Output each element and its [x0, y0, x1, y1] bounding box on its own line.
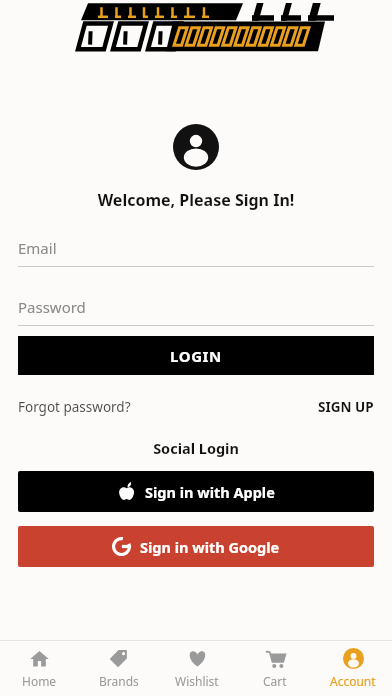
- staticText: Password: [18, 297, 86, 317]
- staticText: Brands: [99, 673, 139, 689]
- button[interactable]: Sign in with Apple: [18, 471, 374, 512]
- button[interactable]: Password: [18, 297, 374, 326]
- button[interactable]: Wishlist: [158, 641, 236, 696]
- button[interactable]: Brands: [79, 641, 158, 696]
- staticText: Account: [330, 673, 376, 689]
- staticText: Wishlist: [175, 673, 219, 689]
- staticText: Welcome, Please Sign In!: [0, 189, 392, 211]
- button[interactable]: Cart: [236, 641, 314, 696]
- staticText: Sign in with Google: [140, 537, 280, 557]
- staticText: SIGN UP: [318, 398, 374, 416]
- staticText: Forgot password?: [18, 398, 131, 416]
- staticText: Cart: [263, 673, 287, 689]
- staticText: Email: [18, 238, 57, 258]
- button[interactable]: Home: [0, 641, 79, 696]
- button[interactable]: SIGN UP: [318, 398, 374, 416]
- button[interactable]: LOGIN: [18, 336, 374, 375]
- button[interactable]: Account: [314, 641, 392, 696]
- staticText: Sign in with Apple: [145, 482, 275, 502]
- staticText: LOGIN: [170, 346, 222, 366]
- staticText: Social Login: [0, 438, 392, 458]
- button[interactable]: Forgot password?: [18, 398, 131, 416]
- button[interactable]: Sign in with Google: [18, 526, 374, 567]
- button[interactable]: Email: [18, 238, 374, 267]
- staticText: Home: [22, 673, 57, 689]
